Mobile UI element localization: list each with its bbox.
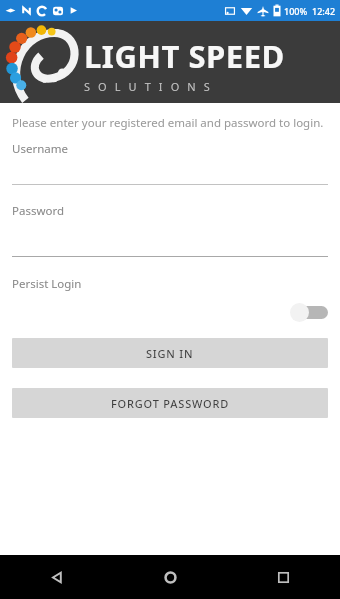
staticText: LIGHT SPEED (84, 35, 285, 77)
staticText: 100% (284, 5, 308, 17)
staticText: Username (12, 141, 68, 157)
staticText: SIGN IN (146, 346, 194, 361)
button[interactable]: Recent apps (227, 555, 340, 599)
button[interactable]: Back (0, 555, 114, 599)
staticText: Persist Login (12, 276, 82, 292)
staticText: 12:42 (312, 5, 336, 17)
button[interactable]: SIGN IN (12, 338, 328, 368)
button[interactable]: FORGOT PASSWORD (12, 388, 328, 418)
button[interactable]: Persist login toggle (290, 300, 328, 324)
staticText: S O L U T I O N S (84, 79, 213, 94)
staticText: Please enter your registered email and p… (12, 115, 328, 131)
staticText: Password (12, 203, 65, 219)
staticText: FORGOT PASSWORD (111, 396, 230, 411)
button[interactable]: Home (114, 555, 227, 599)
